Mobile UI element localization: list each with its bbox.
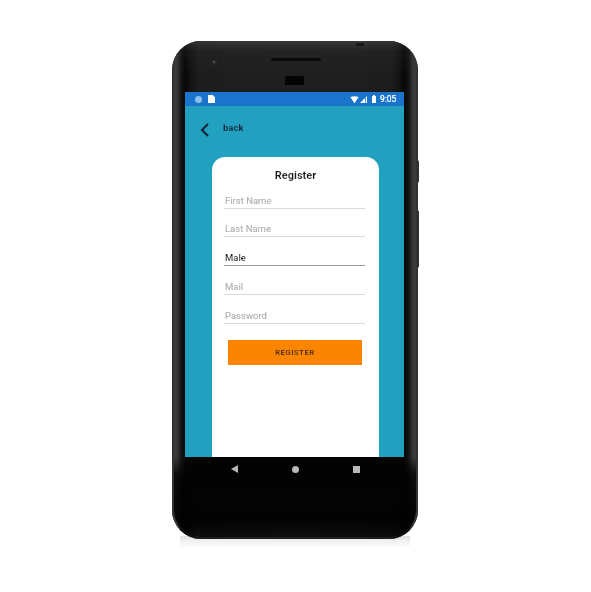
button[interactable]: Recent apps [345, 458, 367, 480]
button[interactable]: Male [224, 246, 365, 266]
staticText: REGISTER [275, 348, 315, 357]
staticText: back [223, 122, 244, 133]
staticText: Last Name [225, 223, 271, 234]
staticText: Mail [225, 281, 244, 292]
button[interactable]: Password [224, 304, 365, 324]
button[interactable]: Home [284, 458, 306, 480]
staticText: Password [225, 310, 267, 321]
button[interactable]: First Name [224, 189, 365, 209]
button[interactable]: Back [223, 458, 245, 480]
button[interactable]: Last Name [224, 217, 365, 237]
staticText: Male [225, 252, 246, 263]
button[interactable]: REGISTER [228, 340, 362, 365]
staticText: First Name [225, 195, 272, 206]
staticText: Register [212, 169, 379, 182]
staticText: 9:05 [380, 94, 397, 104]
button[interactable]: Back [196, 117, 266, 141]
button[interactable]: Mail [224, 275, 365, 295]
